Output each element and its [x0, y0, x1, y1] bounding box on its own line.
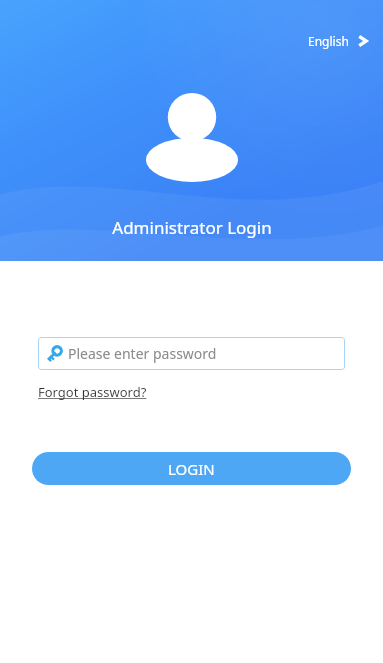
other: Password: [45, 345, 63, 363]
button[interactable]: LOGIN: [32, 452, 351, 485]
staticText: Forgot password?: [38, 383, 147, 401]
staticText: English: [308, 33, 349, 49]
staticText: LOGIN: [168, 459, 215, 479]
staticText: Administrator Login: [112, 216, 272, 239]
button[interactable]: Password: [38, 337, 345, 370]
button[interactable]: Forgot password?: [38, 383, 147, 401]
staticText: Please enter password: [68, 344, 217, 363]
button[interactable]: Change language, English: [301, 28, 375, 54]
